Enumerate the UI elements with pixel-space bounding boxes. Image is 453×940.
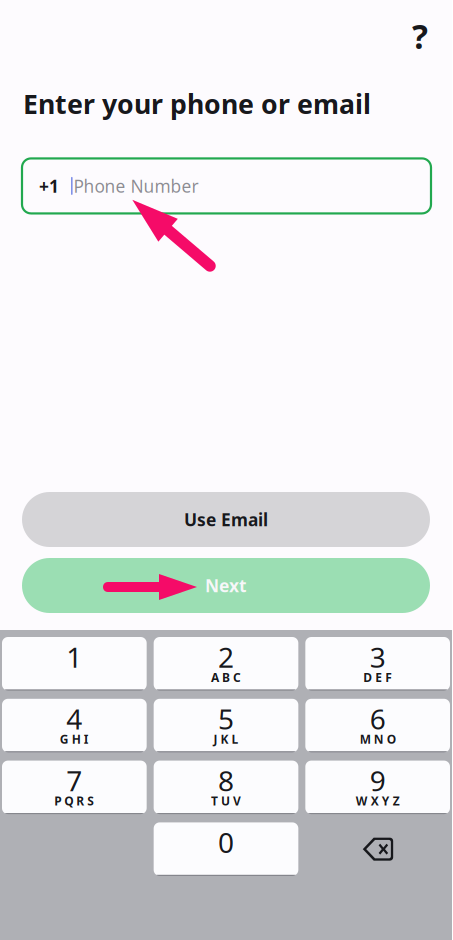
staticText: P Q R S — [54, 793, 94, 809]
staticText: D E F — [363, 669, 392, 685]
button[interactable]: 5 — [154, 699, 298, 752]
staticText: 9 — [370, 762, 386, 799]
staticText: 8 — [218, 762, 234, 799]
staticText: 4 — [66, 700, 82, 737]
staticText: G H I — [60, 731, 89, 747]
staticText: 5 — [218, 700, 234, 737]
staticText: M N O — [360, 731, 396, 747]
button[interactable]: Help — [398, 14, 442, 58]
staticText: W X Y Z — [356, 793, 400, 809]
button[interactable]: 7 — [2, 761, 147, 814]
staticText: 7 — [66, 762, 82, 799]
staticText: T U V — [211, 793, 241, 809]
staticText: 3 — [370, 638, 386, 675]
staticText: ? — [412, 14, 428, 58]
button[interactable]: Next — [22, 558, 430, 613]
button[interactable]: Delete — [305, 822, 450, 876]
staticText: +1 — [39, 174, 59, 197]
staticText: Use Email — [184, 508, 268, 531]
staticText: Next — [205, 574, 247, 597]
button[interactable]: 6 — [305, 699, 450, 752]
button[interactable]: 4 — [2, 699, 147, 752]
staticText: 2 — [218, 638, 234, 675]
staticText: 6 — [370, 700, 386, 737]
button[interactable]: 8 — [154, 761, 298, 814]
button[interactable]: Use Email — [22, 492, 430, 547]
staticText: J K L — [213, 731, 238, 747]
button[interactable]: 3 — [305, 637, 450, 690]
button[interactable]: 1 — [2, 637, 147, 690]
button[interactable]: 9 — [305, 761, 450, 814]
staticText: Enter your phone or email — [23, 86, 371, 121]
button[interactable]: 0 — [154, 822, 298, 876]
staticText: Phone Number — [74, 174, 199, 197]
button[interactable]: 2 — [154, 637, 298, 690]
staticText: A B C — [211, 669, 241, 685]
staticText: 0 — [218, 824, 234, 861]
staticText: 1 — [66, 638, 82, 675]
